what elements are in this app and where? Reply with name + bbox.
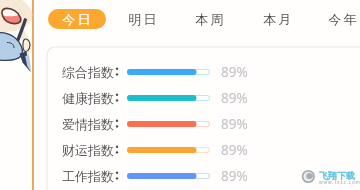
button[interactable]: 健康指数 bbox=[62, 89, 248, 107]
button[interactable]: 本月 bbox=[255, 9, 301, 29]
button[interactable]: 综合指数 bbox=[62, 63, 248, 81]
button[interactable]: 本周 bbox=[187, 9, 233, 29]
staticText: 今日 bbox=[62, 11, 93, 27]
staticText: 89% bbox=[221, 115, 248, 133]
button[interactable]: 今日 bbox=[48, 9, 106, 29]
staticText: 工作指数 bbox=[62, 168, 114, 184]
button[interactable]: 爱情指数 bbox=[62, 115, 248, 133]
staticText: 明日 bbox=[128, 11, 159, 27]
staticText: 89% bbox=[221, 167, 248, 185]
staticText: 飞翔下载 bbox=[319, 170, 355, 181]
button[interactable]: 财运指数 bbox=[62, 141, 248, 159]
other: Fortune mascot bbox=[0, 0, 33, 74]
button[interactable]: 明日 bbox=[120, 9, 166, 29]
staticText: 综合指数 bbox=[62, 64, 114, 80]
staticText: www.fxxz.com bbox=[319, 179, 360, 185]
staticText: 健康指数 bbox=[62, 90, 114, 106]
staticText: 89% bbox=[221, 89, 248, 107]
staticText: 爱情指数 bbox=[62, 116, 114, 132]
staticText: 89% bbox=[221, 63, 248, 81]
staticText: 本月 bbox=[263, 11, 294, 27]
staticText: 财运指数 bbox=[62, 142, 114, 158]
staticText: 89% bbox=[221, 141, 248, 159]
button[interactable]: 今年 bbox=[320, 9, 360, 29]
staticText: 本周 bbox=[195, 11, 226, 27]
staticText: 今年 bbox=[328, 11, 359, 27]
button[interactable]: 工作指数 bbox=[62, 167, 248, 185]
